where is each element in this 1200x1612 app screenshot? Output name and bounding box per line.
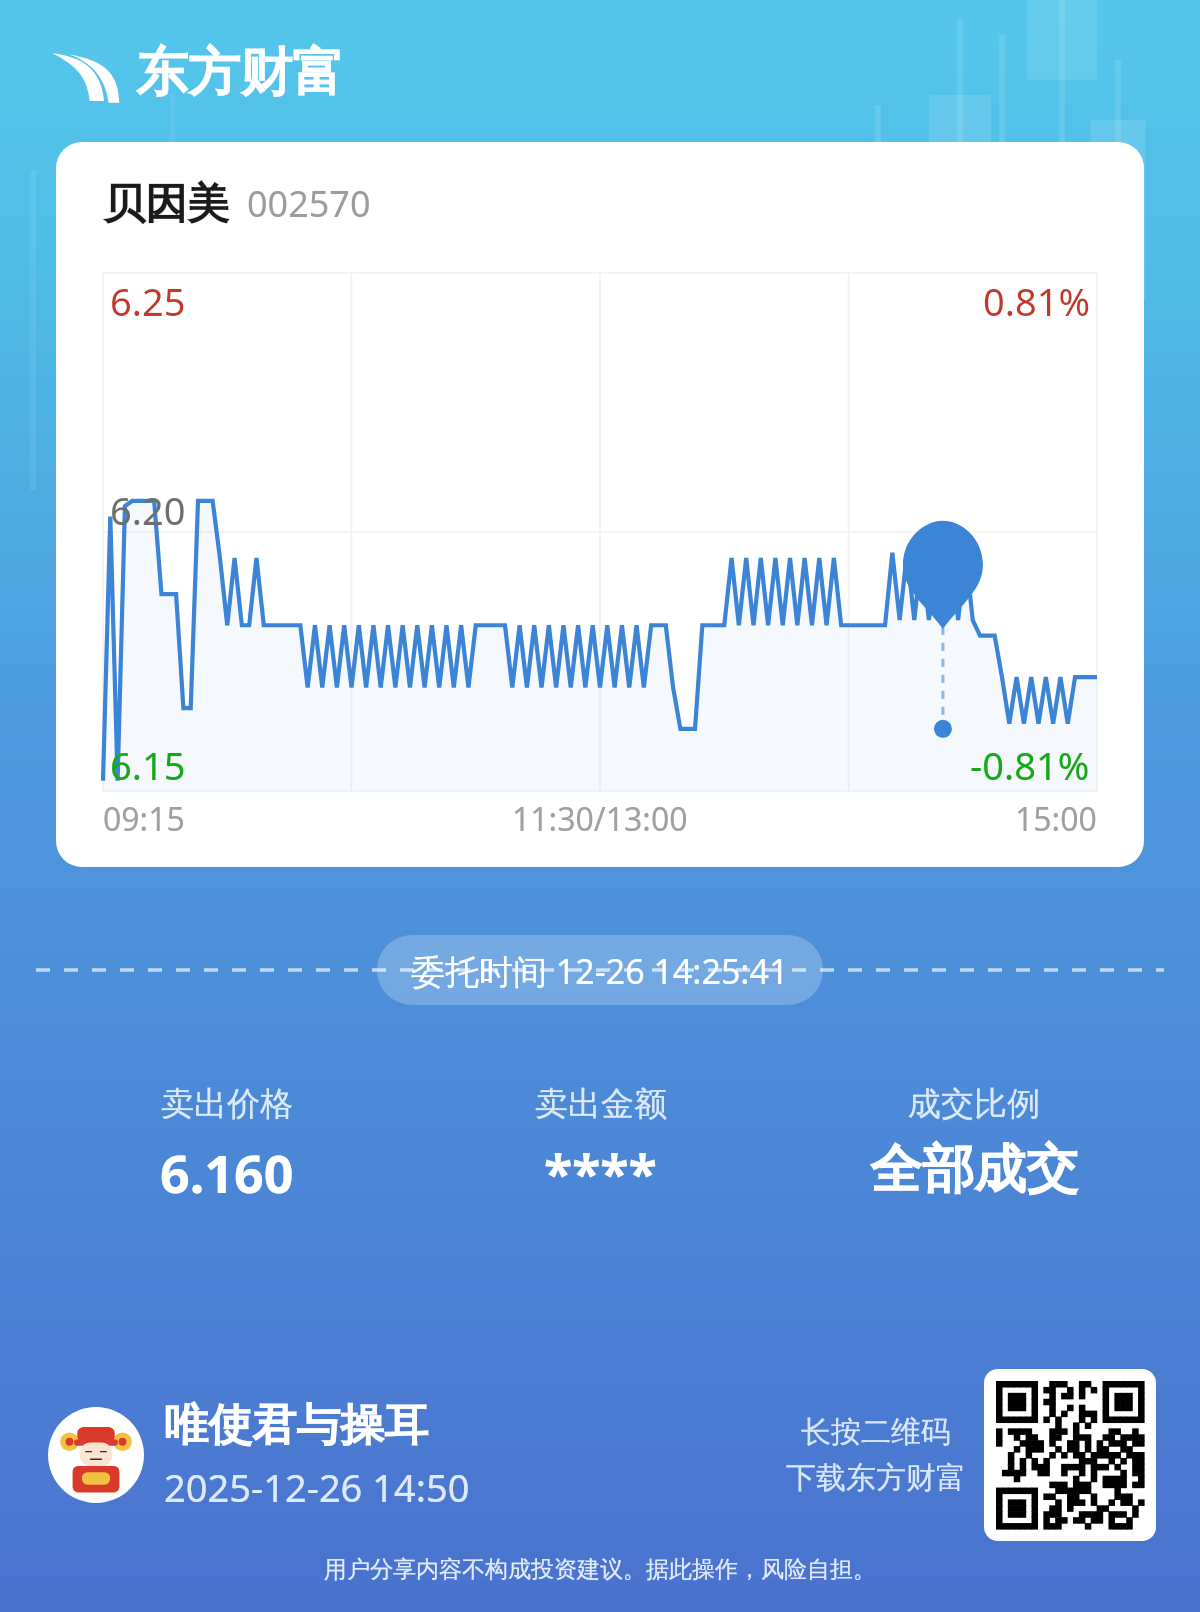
button[interactable]: 委托时间 12-26 14:25:41 xyxy=(411,948,789,992)
staticText: 09:15 xyxy=(103,797,185,841)
button[interactable]: 东方财富 xyxy=(48,40,1200,106)
staticText: 002570 xyxy=(247,179,371,228)
staticText: 11:30/13:00 xyxy=(512,797,688,841)
button[interactable]: 成交比例 xyxy=(787,1083,1160,1203)
staticText: 0.81% xyxy=(983,275,1090,327)
staticText: 6.15 xyxy=(110,739,186,791)
staticText: **** xyxy=(544,1137,657,1208)
button[interactable]: 二维码 xyxy=(984,1369,1156,1541)
staticText: 用户分享内容不构成投资建议。据此操作，风险自担。 xyxy=(0,1555,1200,1584)
staticText: 东方财富 xyxy=(136,40,344,106)
staticText: 委托时间 12-26 14:25:41 xyxy=(411,948,789,992)
staticText: 6.20 xyxy=(110,484,186,536)
staticText: 贝因美 xyxy=(103,178,229,231)
staticText: 15:00 xyxy=(1015,797,1097,841)
staticText: -0.81% xyxy=(970,739,1090,791)
staticText: 下载东方财富 xyxy=(786,1459,966,1497)
staticText: 6.25 xyxy=(110,275,186,327)
staticText: 长按二维码 xyxy=(801,1413,951,1451)
staticText: 卖出价格 xyxy=(161,1083,293,1125)
button[interactable]: 贝因美 xyxy=(56,142,1144,867)
staticText: 6.160 xyxy=(160,1137,294,1208)
staticText: 卖出金额 xyxy=(535,1083,667,1125)
staticText: 2025-12-26 14:50 xyxy=(164,1461,470,1513)
staticText: 成交比例 xyxy=(908,1083,1040,1125)
button[interactable]: 卖出金额 xyxy=(414,1083,787,1208)
staticText: 唯使君与操耳 xyxy=(164,1398,428,1453)
button[interactable]: 卖出价格 xyxy=(40,1083,414,1208)
button[interactable]: 用户头像 xyxy=(48,1407,144,1503)
staticText: 全部成交 xyxy=(870,1137,1078,1203)
